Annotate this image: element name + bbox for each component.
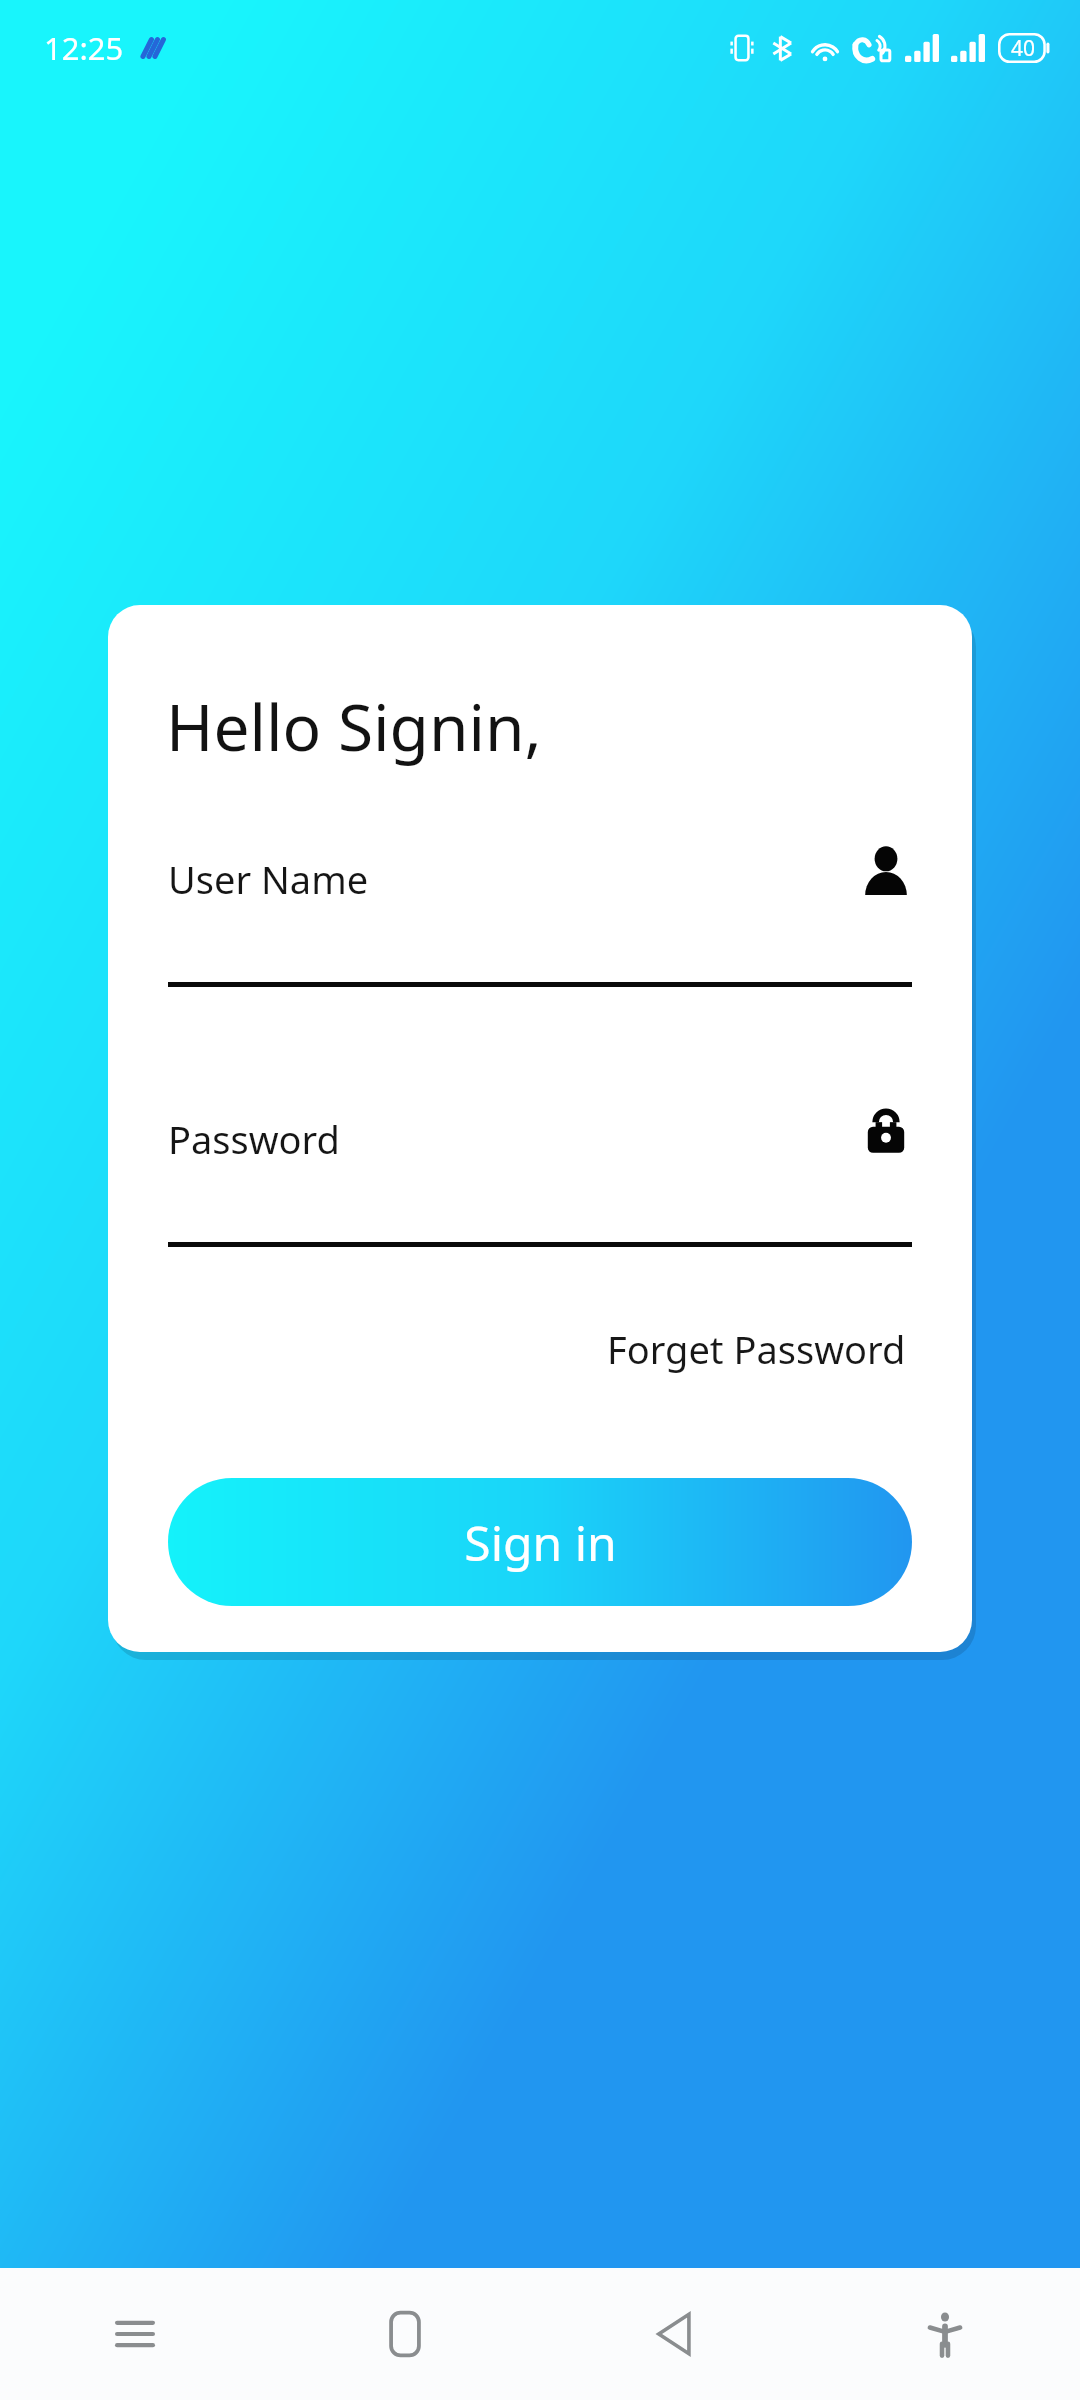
other: Password locked	[860, 1105, 912, 1157]
button[interactable]: Accessibility menu	[810, 2268, 1080, 2400]
staticText: Forget Password	[607, 1323, 906, 1375]
button[interactable]: User Name	[168, 845, 912, 995]
button[interactable]: Back	[540, 2268, 810, 2400]
staticText: 40	[1011, 34, 1036, 63]
button[interactable]: Password	[168, 1105, 912, 1255]
button[interactable]: Sign in	[168, 1478, 912, 1606]
staticText: Hello Signin,	[166, 683, 542, 770]
button[interactable]: Forget Password	[601, 1315, 912, 1383]
staticText: Password	[168, 1113, 340, 1165]
staticText: 12:25	[44, 27, 124, 69]
staticText: User Name	[168, 853, 369, 905]
other: User account	[860, 845, 912, 897]
button[interactable]: Home	[270, 2268, 540, 2400]
button[interactable]: Recent apps	[0, 2268, 270, 2400]
staticText: Sign in	[464, 1510, 617, 1575]
